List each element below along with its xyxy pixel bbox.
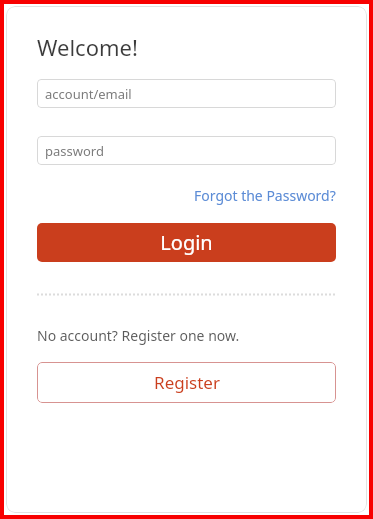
staticText: account/email — [45, 85, 132, 103]
staticText: Welcome! — [37, 32, 138, 62]
staticText: Register — [154, 371, 220, 394]
button[interactable]: account/email — [37, 79, 336, 108]
staticText: No account? Register one now. — [37, 326, 240, 345]
staticText: password — [45, 142, 104, 160]
button[interactable]: Login — [37, 223, 336, 262]
staticText: Login — [160, 229, 213, 256]
button[interactable]: password — [37, 136, 336, 165]
button[interactable]: Forgot the Password? — [194, 186, 336, 205]
button[interactable]: Register — [37, 362, 336, 403]
